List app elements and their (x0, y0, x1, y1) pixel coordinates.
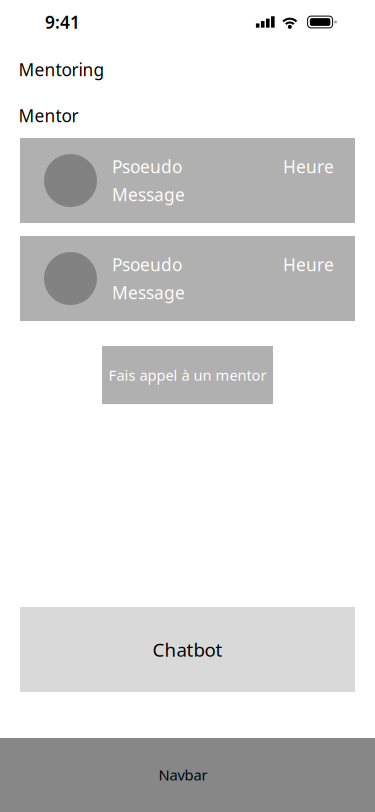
staticText: Navbar (158, 765, 207, 784)
staticText: 9:41 (45, 10, 80, 33)
staticText: Fais appel à un mentor (108, 365, 266, 385)
staticText: Psoeudo (112, 253, 182, 276)
staticText: Message (112, 183, 185, 206)
staticText: Heure (283, 155, 334, 178)
button[interactable]: Fais appel à un mentor (102, 346, 273, 404)
staticText: Psoeudo (112, 155, 182, 178)
staticText: Mentoring (18, 58, 104, 81)
staticText: Heure (283, 253, 334, 276)
staticText: Message (112, 281, 185, 304)
button[interactable]: Psoeudo (20, 236, 355, 321)
button[interactable]: Chatbot (20, 607, 355, 692)
button[interactable]: Navbar (0, 738, 375, 812)
staticText: Chatbot (152, 637, 222, 662)
staticText: Mentor (18, 104, 78, 127)
button[interactable]: Psoeudo (20, 138, 355, 223)
